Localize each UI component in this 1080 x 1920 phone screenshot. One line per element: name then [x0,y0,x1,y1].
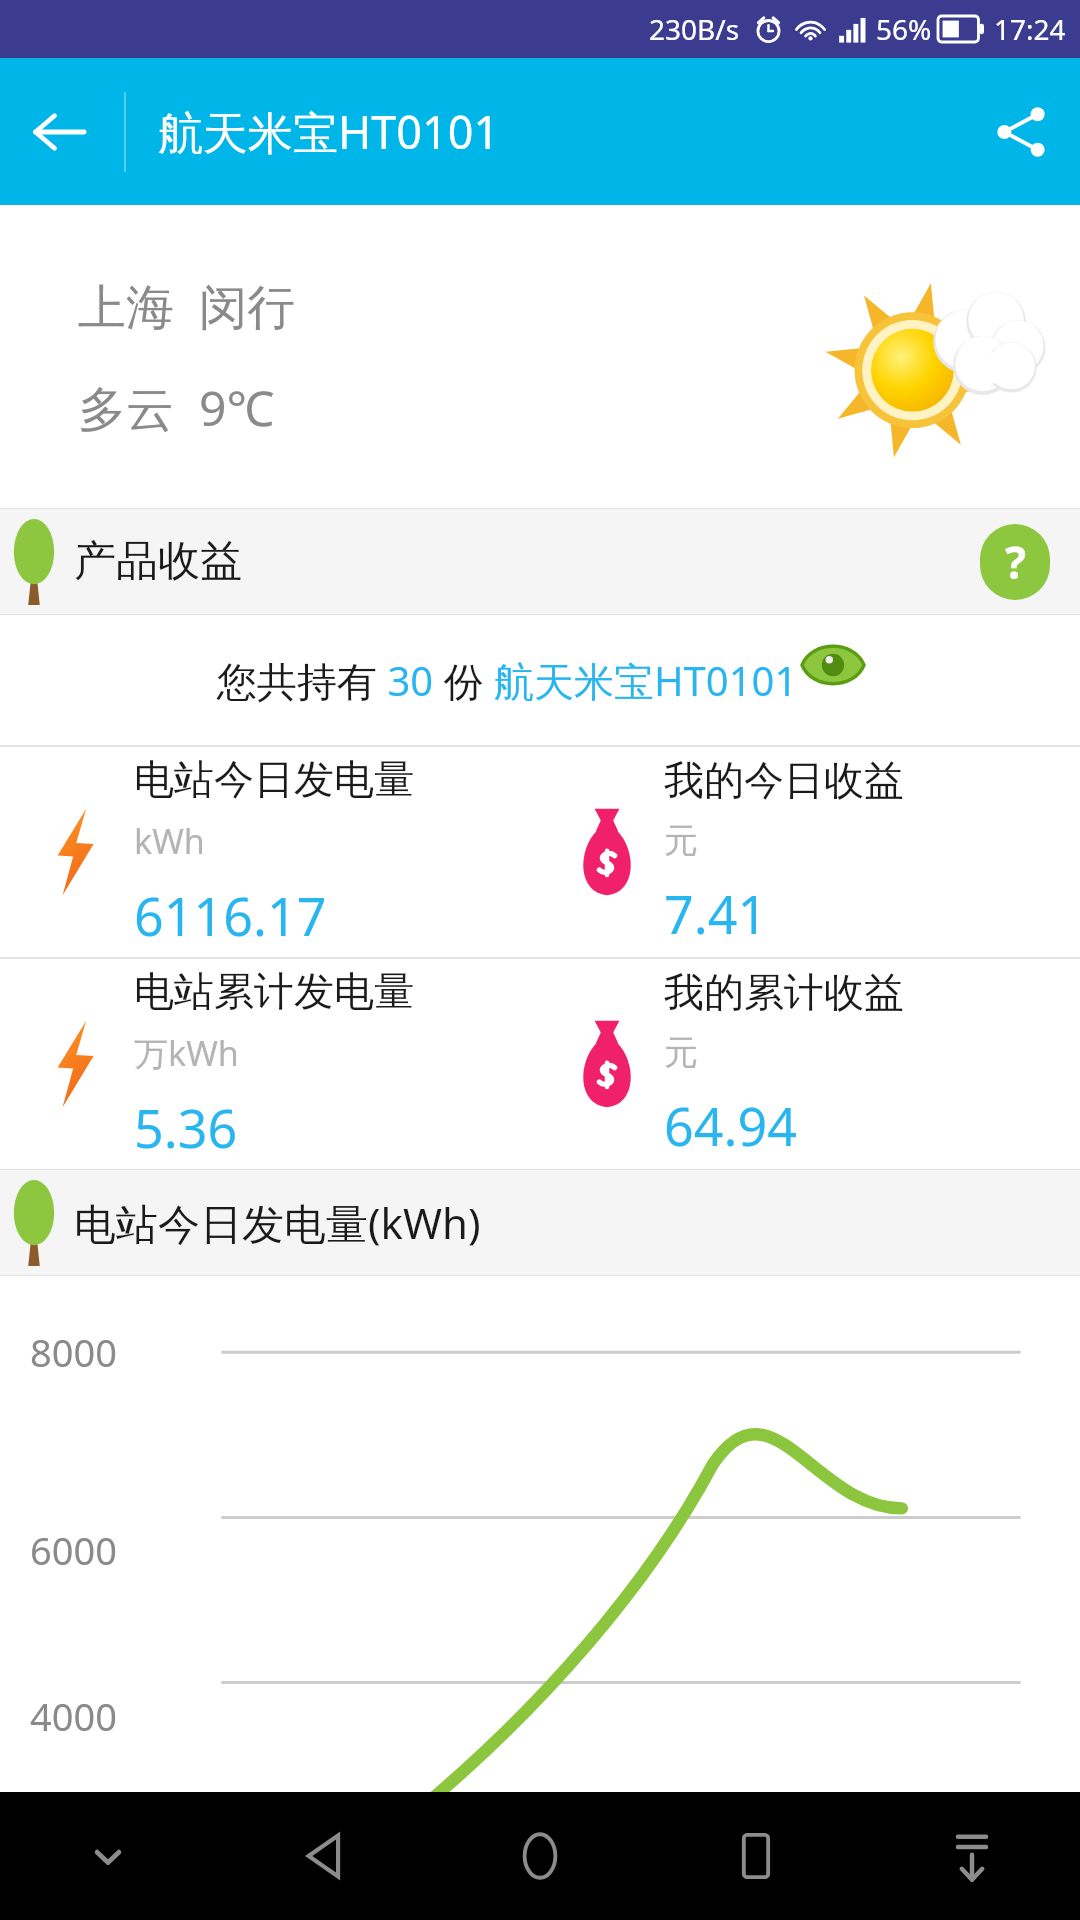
button[interactable]: 电站累计发电量 [0,959,540,1169]
staticText: 上海 闵行 [78,273,295,339]
staticText: 6000 [30,1524,117,1576]
staticText: ? [1005,532,1026,592]
staticText: 5.36 [134,1092,238,1163]
staticText: 6116.17 [134,880,327,951]
button[interactable]: Help [980,524,1050,600]
staticText: 电站今日发电量 [134,754,414,804]
staticText: 我的累计收益 [664,967,904,1017]
button[interactable]: Recents [648,1792,864,1920]
staticText: 您共持有 30 份 航天米宝HT0101 [217,653,798,708]
button[interactable]: 我的累计收益 [540,959,1080,1169]
staticText: 元 [664,1031,698,1074]
staticText: 4000 [30,1690,117,1742]
staticText: 多云 9℃ [78,375,275,441]
staticText: 56% [876,10,932,48]
staticText: 电站累计发电量 [134,966,414,1016]
button[interactable]: Hide keyboard [0,1792,216,1920]
button[interactable]: Home [432,1792,648,1920]
staticText: 230B/s [649,10,740,48]
button[interactable]: Back [216,1792,432,1920]
button[interactable]: Back [0,73,118,191]
staticText: 64.94 [664,1090,797,1161]
staticText: kWh [134,818,205,864]
button[interactable]: Share [962,73,1080,191]
staticText: 7.41 [664,878,768,949]
button[interactable]: 电站今日发电量 [0,747,540,957]
button[interactable]: 上海 闵行 [0,205,1080,508]
staticText: 产品收益 [74,535,242,588]
staticText: 8000 [30,1326,117,1378]
staticText: 17:24 [994,10,1066,48]
staticText: 万kWh [134,1030,239,1076]
staticText: 航天米宝HT0101 [158,101,500,162]
staticText: 我的今日收益 [664,755,904,805]
button[interactable]: Toggle visibility [802,639,864,691]
button[interactable]: Collapse [864,1792,1080,1920]
button[interactable]: 我的今日收益 [540,747,1080,957]
staticText: 电站今日发电量(kWh) [74,1194,481,1251]
staticText: 元 [664,819,698,862]
button[interactable]: 您共持有 30 份 航天米宝HT0101 [0,615,1080,745]
